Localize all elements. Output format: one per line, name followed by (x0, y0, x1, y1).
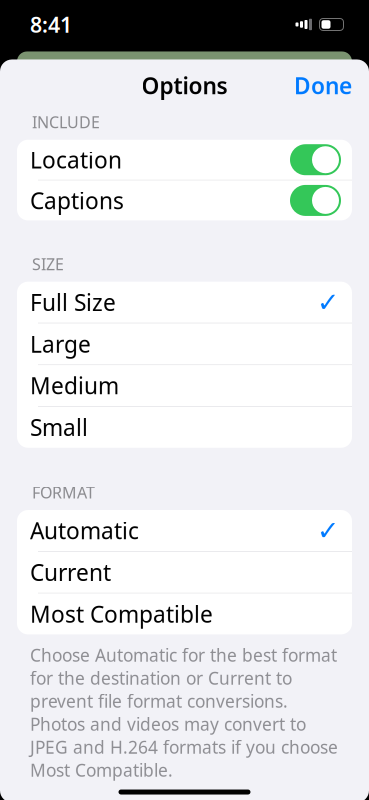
button[interactable]: Done (278, 62, 368, 108)
staticText: Captions (30, 185, 124, 215)
staticText: Done (294, 70, 352, 100)
button[interactable]: Small (17, 407, 352, 448)
staticText: Automatic (30, 515, 139, 546)
button[interactable]: Full Size (17, 282, 352, 323)
staticText: Large (30, 329, 91, 359)
staticText: ✓ (317, 515, 339, 546)
button[interactable]: Location (17, 140, 352, 180)
staticText: Choose Automatic for the best format for… (30, 643, 338, 781)
staticText: 8:41 (30, 10, 72, 39)
button[interactable]: Most Compatible (17, 593, 352, 634)
button[interactable]: Automatic (17, 510, 352, 551)
staticText: Options (141, 70, 227, 100)
button[interactable]: Medium (17, 365, 352, 406)
button[interactable]: Large (17, 323, 352, 364)
staticText: Location (30, 145, 122, 175)
staticText: INCLUDE (32, 111, 100, 133)
staticText: Most Compatible (30, 599, 213, 629)
staticText: ✓ (317, 287, 339, 317)
staticText: Medium (30, 370, 119, 401)
staticText: Small (30, 412, 88, 442)
button[interactable]: Current (17, 552, 352, 593)
staticText: FORMAT (32, 482, 95, 503)
button[interactable]: Captions (17, 180, 352, 220)
staticText: SIZE (32, 253, 64, 275)
staticText: Full Size (30, 287, 116, 317)
staticText: Current (30, 557, 111, 587)
